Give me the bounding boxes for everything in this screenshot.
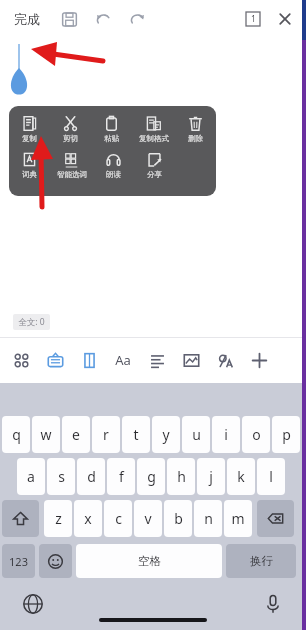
- button[interactable]: s: [47, 458, 75, 495]
- button[interactable]: Page: [72, 343, 106, 377]
- button[interactable]: 全文: 0: [13, 314, 50, 330]
- staticText: e: [72, 425, 80, 444]
- button[interactable]: 粘贴: [91, 115, 132, 143]
- button[interactable]: Font: [106, 343, 140, 377]
- staticText: 空格: [138, 554, 161, 568]
- button[interactable]: h: [167, 458, 195, 495]
- button[interactable]: u: [182, 416, 210, 453]
- staticText: 剪切: [63, 134, 78, 143]
- staticText: Aa: [115, 351, 131, 369]
- staticText: 全文: 0: [18, 316, 45, 328]
- button[interactable]: g: [137, 458, 165, 495]
- button[interactable]: 空格: [76, 544, 222, 578]
- staticText: 复制格式: [139, 134, 169, 143]
- staticText: u: [192, 425, 201, 444]
- staticText: d: [87, 467, 96, 486]
- button[interactable]: 智能选词: [50, 151, 93, 179]
- staticText: n: [204, 509, 213, 528]
- button[interactable]: Keyboard: [38, 343, 72, 377]
- staticText: o: [252, 425, 261, 444]
- staticText: k: [237, 467, 245, 486]
- button[interactable]: Redo: [120, 2, 154, 36]
- staticText: 123: [9, 554, 28, 569]
- button[interactable]: k: [227, 458, 255, 495]
- staticText: h: [177, 467, 186, 486]
- button[interactable]: Shift: [2, 500, 39, 537]
- button[interactable]: q: [2, 416, 30, 453]
- button[interactable]: b: [164, 500, 192, 537]
- button[interactable]: Paragraph: [140, 343, 174, 377]
- staticText: l: [269, 467, 273, 486]
- button[interactable]: i: [212, 416, 240, 453]
- button[interactable]: Undo: [86, 2, 120, 36]
- button[interactable]: More: [242, 343, 276, 377]
- button[interactable]: z: [44, 500, 72, 537]
- button[interactable]: e: [62, 416, 90, 453]
- staticText: m: [231, 509, 245, 528]
- button[interactable]: Insert image: [174, 343, 208, 377]
- staticText: 换行: [250, 554, 273, 568]
- button[interactable]: 123: [2, 544, 35, 578]
- button[interactable]: Change language: [18, 589, 48, 619]
- button[interactable]: o: [242, 416, 270, 453]
- staticText: 智能选词: [57, 170, 87, 179]
- button[interactable]: 复制: [9, 115, 50, 143]
- button[interactable]: Handwriting: [208, 343, 242, 377]
- button[interactable]: c: [104, 500, 132, 537]
- staticText: y: [162, 425, 170, 444]
- button[interactable]: t: [122, 416, 150, 453]
- staticText: 分享: [147, 170, 162, 179]
- staticText: s: [58, 467, 65, 486]
- button[interactable]: x: [74, 500, 102, 537]
- staticText: 复制: [22, 134, 37, 143]
- staticText: w: [40, 425, 52, 444]
- staticText: x: [84, 509, 92, 528]
- staticText: i: [224, 425, 228, 444]
- button[interactable]: m: [224, 500, 252, 537]
- button[interactable]: a: [17, 458, 45, 495]
- staticText: a: [27, 467, 35, 486]
- button[interactable]: j: [197, 458, 225, 495]
- button[interactable]: n: [194, 500, 222, 537]
- button[interactable]: 完成: [12, 7, 42, 31]
- button[interactable]: d: [77, 458, 105, 495]
- staticText: 词典: [22, 170, 37, 179]
- button[interactable]: w: [32, 416, 60, 453]
- button[interactable]: r: [92, 416, 120, 453]
- button[interactable]: Save: [52, 2, 86, 36]
- button[interactable]: p: [272, 416, 300, 453]
- staticText: v: [144, 509, 152, 528]
- button[interactable]: 词典: [9, 151, 50, 179]
- button[interactable]: 剪切: [50, 115, 91, 143]
- button[interactable]: y: [152, 416, 180, 453]
- staticText: j: [209, 467, 213, 486]
- button[interactable]: 朗读: [93, 151, 134, 179]
- staticText: 粘贴: [104, 134, 119, 143]
- button[interactable]: Emoji: [39, 544, 72, 578]
- button[interactable]: f: [107, 458, 135, 495]
- staticText: 完成: [14, 11, 40, 27]
- staticText: 删除: [188, 134, 203, 143]
- staticText: z: [55, 509, 62, 528]
- button[interactable]: v: [134, 500, 162, 537]
- staticText: g: [147, 467, 156, 486]
- button[interactable]: Close: [274, 8, 296, 30]
- button[interactable]: Voice input: [258, 589, 288, 619]
- button[interactable]: Pages: [246, 12, 260, 26]
- button[interactable]: Templates: [4, 343, 38, 377]
- staticText: p: [282, 425, 291, 444]
- staticText: 朗读: [106, 170, 121, 179]
- staticText: r: [103, 425, 109, 444]
- button[interactable]: Backspace: [257, 500, 294, 537]
- staticText: 1: [251, 13, 256, 25]
- button[interactable]: l: [257, 458, 285, 495]
- button[interactable]: 删除: [175, 115, 216, 143]
- button[interactable]: 换行: [226, 544, 296, 578]
- staticText: b: [174, 509, 183, 528]
- staticText: t: [133, 425, 139, 444]
- button[interactable]: 分享: [134, 151, 175, 179]
- button[interactable]: 复制格式: [132, 115, 175, 143]
- staticText: f: [119, 467, 124, 486]
- staticText: q: [12, 425, 21, 444]
- staticText: c: [115, 509, 122, 528]
